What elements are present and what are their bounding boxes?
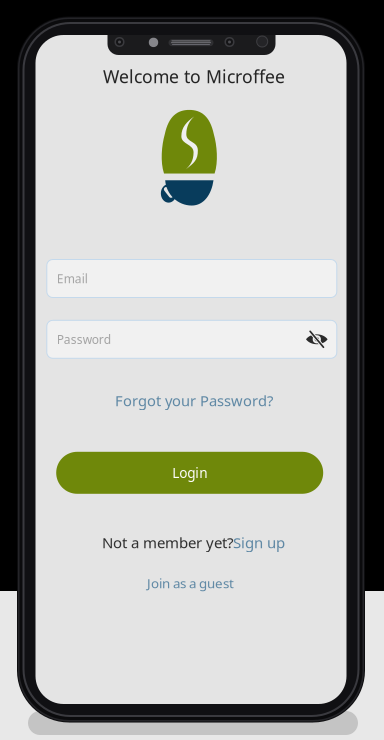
- staticText: Forgot your Password?: [115, 390, 273, 410]
- staticText: Join as a guest: [147, 574, 234, 592]
- staticText: Not a member yet?: [102, 532, 233, 553]
- button[interactable]: Sign up: [233, 532, 285, 553]
- button[interactable]: Join as a guest: [147, 574, 234, 592]
- button[interactable]: Forgot your Password?: [115, 390, 273, 410]
- staticText: Email: [57, 270, 88, 287]
- staticText: Login: [172, 463, 207, 482]
- button[interactable]: Show password: [305, 329, 329, 349]
- staticText: Password: [57, 331, 111, 347]
- staticText: Sign up: [233, 532, 285, 553]
- staticText: Welcome to Microffee: [103, 64, 285, 88]
- button[interactable]: Login: [56, 452, 323, 494]
